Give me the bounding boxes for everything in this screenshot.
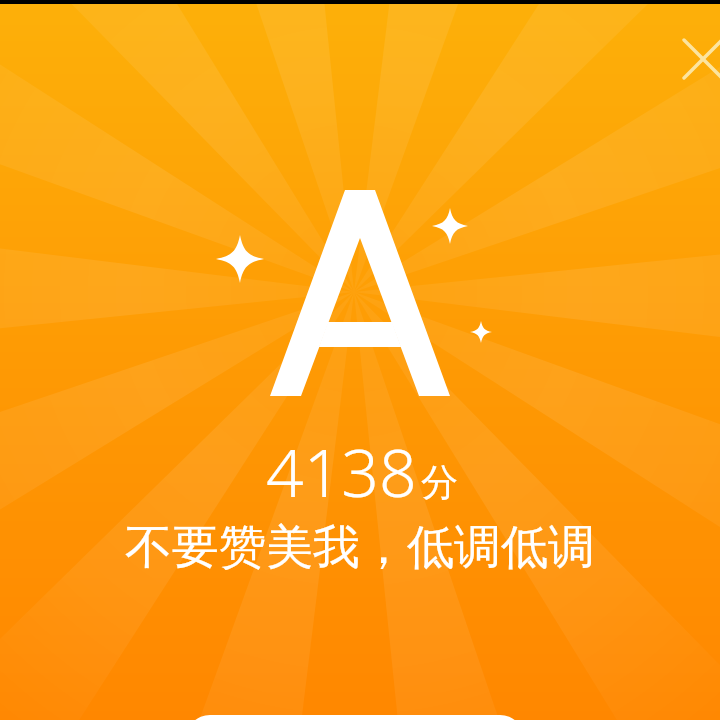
staticText: 分: [421, 459, 458, 506]
button[interactable]: Share result: [186, 715, 524, 720]
button[interactable]: Close: [673, 29, 720, 89]
staticText: 4138: [266, 426, 417, 516]
staticText: 不要赞美我，低调低调: [125, 518, 595, 577]
